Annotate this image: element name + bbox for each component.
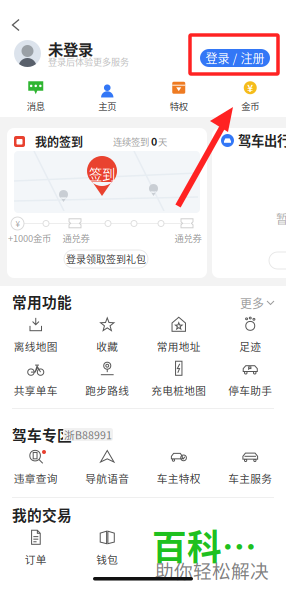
button[interactable]: 充电桩地图 <box>143 360 214 398</box>
button[interactable]: 更多 <box>224 295 274 311</box>
staticText: 天 <box>158 135 167 148</box>
staticText: 驾车专区 <box>12 424 72 445</box>
button[interactable]: 导航语音 <box>71 448 143 486</box>
staticText: 浙B88991 <box>64 427 112 442</box>
staticText: 签到 <box>89 164 115 183</box>
staticText: 导航语音 <box>85 470 129 486</box>
staticText: 车主服务 <box>228 470 272 486</box>
button[interactable]: 停车助手 <box>214 360 286 398</box>
staticText: 通兑券 <box>174 231 201 245</box>
staticText: 百科全说 <box>152 520 282 570</box>
staticText: ¥ <box>247 80 253 95</box>
staticText: 0 <box>151 133 157 149</box>
button[interactable]: 消息 <box>0 81 71 113</box>
staticText: 通兑券 <box>62 231 89 245</box>
staticText: 我的交易 <box>12 504 72 525</box>
staticText: 收藏 <box>96 338 118 354</box>
staticText: ¥ <box>15 218 19 229</box>
button[interactable]: 登录领取签到礼包 <box>64 250 148 268</box>
button[interactable]: 主页 <box>71 81 143 113</box>
staticText: 登录领取签到礼包 <box>66 252 146 266</box>
staticText: 钱包 <box>96 551 118 567</box>
staticText: 消息 <box>27 99 45 113</box>
button[interactable]: 跑步路线 <box>71 360 143 398</box>
staticText: 充电桩地图 <box>151 382 206 398</box>
staticText: 连续签到 <box>113 135 149 148</box>
staticText: 违章查询 <box>14 470 58 486</box>
staticText: 足迹 <box>239 338 261 354</box>
staticText: 助你轻松解决 <box>155 556 269 583</box>
staticText: 金币 <box>241 99 259 113</box>
staticText: 常用功能 <box>12 291 72 312</box>
staticText: 订单 <box>25 551 47 567</box>
button[interactable]: 常用地址 <box>143 316 214 354</box>
staticText: 登录 / 注册 <box>205 49 264 67</box>
staticText: +1000金币 <box>8 231 51 245</box>
button[interactable]: 订单 <box>0 529 71 567</box>
staticText: 登录后体验更多服务 <box>48 55 129 68</box>
button[interactable]: 离线地图 <box>0 316 71 354</box>
staticText: 离线地图 <box>14 338 58 354</box>
button[interactable]: 收藏 <box>71 316 143 354</box>
staticText: 停车助手 <box>228 382 272 398</box>
button[interactable]: 登录 / 注册 <box>200 49 270 67</box>
staticText: 未登录 <box>48 37 93 60</box>
staticText: 驾车出行 <box>238 130 286 150</box>
button[interactable]: 特权 <box>143 81 214 113</box>
button[interactable]: ¥ <box>214 81 286 113</box>
staticText: 常用地址 <box>157 338 201 354</box>
staticText: 更多 <box>240 294 264 312</box>
button[interactable]: 足迹 <box>214 316 286 354</box>
staticText: 主页 <box>98 99 116 113</box>
button[interactable]: 违章查询 <box>0 448 71 486</box>
button[interactable]: 钱包 <box>71 529 143 567</box>
staticText: 车主特权 <box>157 470 201 486</box>
staticText: 共享单车 <box>14 382 58 398</box>
button[interactable]: 返回 <box>1 12 31 38</box>
button[interactable]: 共享单车 <box>0 360 71 398</box>
staticText: 我的签到 <box>35 133 83 150</box>
staticText: 跑步路线 <box>85 382 129 398</box>
button[interactable]: 车主服务 <box>214 448 286 486</box>
button[interactable]: 车主特权 <box>143 448 214 486</box>
button[interactable]: 车主特权 <box>269 252 286 269</box>
staticText: 暂无驾驶记录 <box>276 210 286 227</box>
staticText: 特权 <box>170 99 188 113</box>
